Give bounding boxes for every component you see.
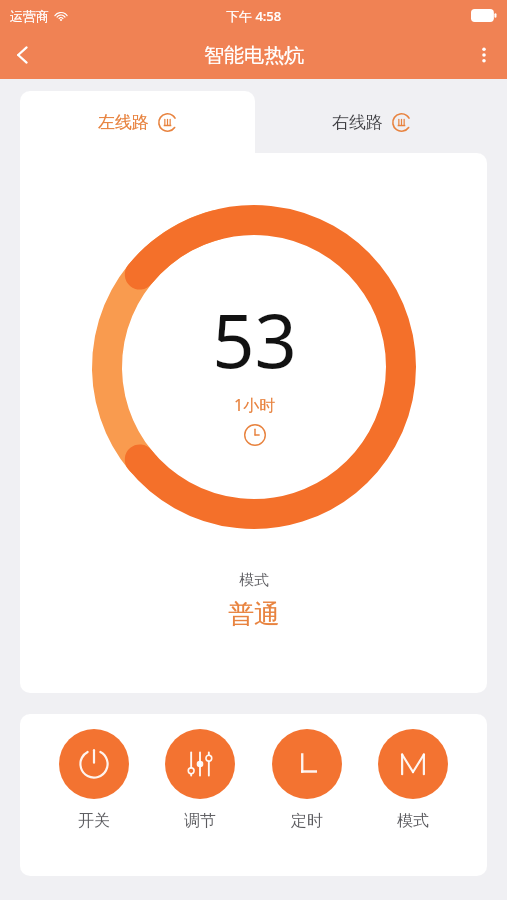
staticText: 左线路	[98, 112, 149, 133]
staticText: 53	[212, 289, 297, 390]
button[interactable]: Back	[0, 32, 46, 78]
staticText: 右线路	[332, 112, 383, 133]
button[interactable]: 调节	[159, 729, 241, 831]
staticText: 定时	[291, 811, 323, 831]
button[interactable]: 左线路	[20, 91, 255, 153]
button[interactable]: 开关	[53, 729, 135, 831]
button[interactable]: 右线路	[255, 91, 487, 153]
staticText: 开关	[78, 811, 110, 831]
staticText: 运营商	[10, 8, 49, 24]
button[interactable]: 模式	[372, 729, 454, 831]
staticText: 模式	[397, 811, 429, 831]
button[interactable]: More options	[461, 32, 507, 78]
staticText: 智能电热炕	[204, 43, 304, 68]
staticText: 1小时	[234, 394, 276, 416]
staticText: 下午 4:58	[226, 7, 282, 25]
staticText: 模式	[239, 571, 269, 590]
staticText: 普通	[228, 598, 280, 631]
staticText: 调节	[184, 811, 216, 831]
button[interactable]: 定时	[266, 729, 348, 831]
